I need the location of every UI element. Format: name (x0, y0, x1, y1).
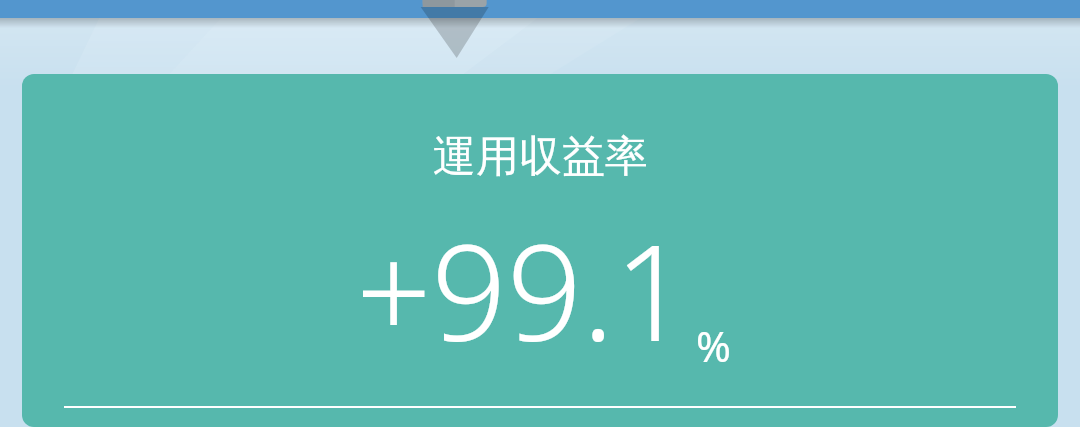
button[interactable]: 運用収益率 (22, 74, 1058, 427)
staticText: % (696, 317, 731, 374)
other: Tab handle (0, 0, 1080, 30)
staticText: +99.1 (356, 200, 690, 380)
staticText: 運用収益率 (433, 130, 648, 184)
